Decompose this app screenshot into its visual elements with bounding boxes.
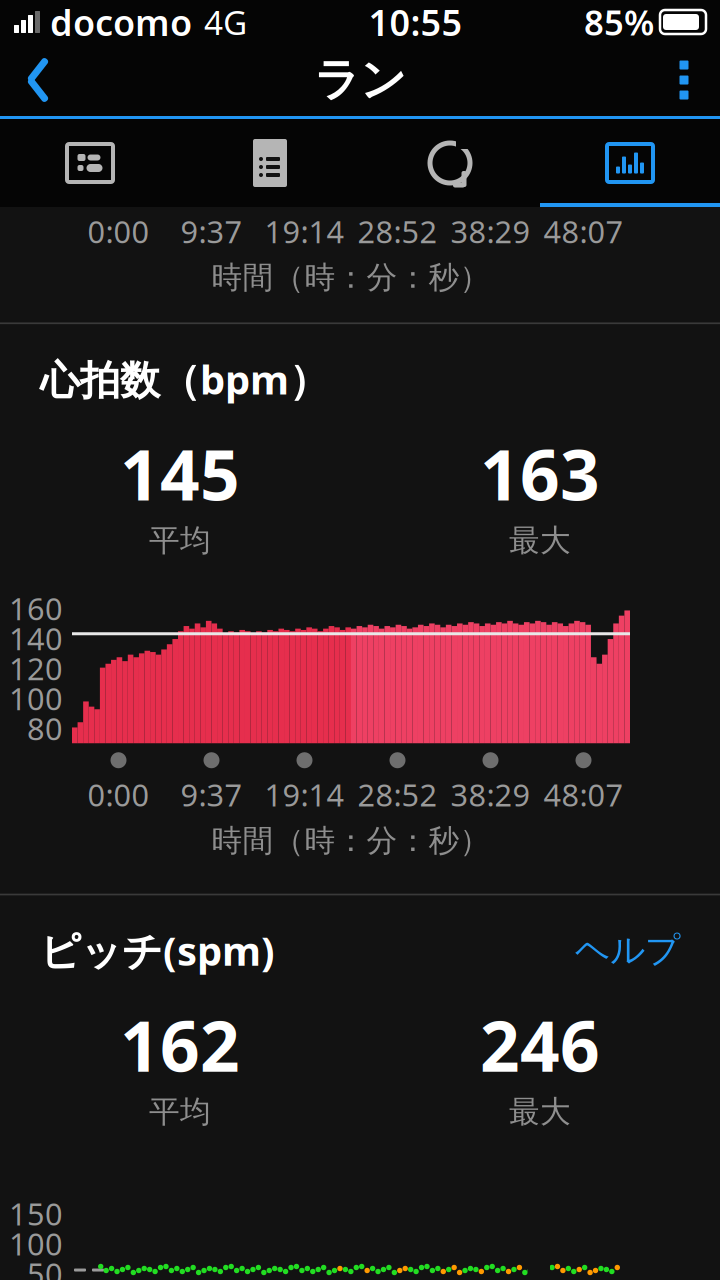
staticText: 160 (9, 588, 63, 629)
staticText: 10:55 (368, 0, 462, 46)
button[interactable]: グラフ (540, 119, 720, 207)
staticText: 85% (584, 0, 654, 45)
staticText: 0:00 (87, 211, 149, 252)
staticText: 19:14 (264, 774, 344, 815)
staticText: 28:52 (357, 774, 437, 815)
staticText: 100 (9, 1223, 63, 1264)
staticText: 163 (480, 427, 600, 520)
staticText: 平均 (149, 1093, 211, 1130)
staticText: ヘルプ (575, 929, 680, 971)
staticText: 時間（時：分：秒） (211, 822, 490, 860)
staticText: 150 (9, 1193, 63, 1234)
button[interactable]: ヘルプ (575, 929, 680, 971)
staticText: 246 (480, 999, 600, 1091)
button[interactable]: 戻る (0, 44, 76, 116)
staticText: docomo (50, 0, 192, 46)
staticText: 19:14 (264, 211, 344, 252)
staticText: ピッチ(spm) (40, 924, 275, 977)
staticText: 48:07 (543, 211, 623, 252)
staticText: 最大 (509, 522, 571, 559)
button[interactable]: 詳細 (180, 119, 360, 207)
staticText: 120 (9, 648, 63, 689)
button[interactable]: その他のオプション (648, 44, 720, 116)
button[interactable]: ラップ (360, 119, 540, 207)
staticText: 4G (204, 0, 247, 44)
staticText: 心拍数（bpm） (40, 352, 329, 405)
staticText: ラン (314, 52, 406, 108)
staticText: 9:37 (180, 774, 242, 815)
staticText: 28:52 (357, 211, 437, 252)
staticText: 最大 (509, 1093, 571, 1130)
staticText: 145 (120, 427, 240, 520)
staticText: 140 (9, 618, 63, 659)
staticText: 時間（時：分：秒） (211, 259, 490, 296)
staticText: 80 (27, 708, 63, 749)
staticText: 平均 (149, 522, 211, 559)
staticText: 38:29 (450, 211, 530, 252)
button[interactable]: マップ (0, 119, 180, 207)
staticText: 48:07 (543, 774, 623, 815)
staticText: 9:37 (180, 211, 242, 252)
staticText: 50 (27, 1253, 63, 1280)
staticText: 162 (120, 999, 240, 1091)
staticText: 0:00 (87, 774, 149, 815)
staticText: 38:29 (450, 774, 530, 815)
staticText: 100 (9, 678, 63, 719)
